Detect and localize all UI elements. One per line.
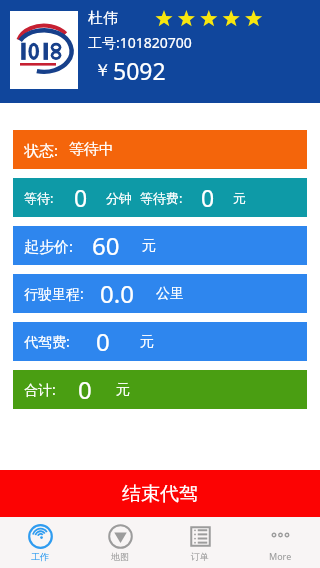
button[interactable]: 订单 [160, 517, 240, 568]
staticText: 杜伟 [88, 9, 118, 28]
staticText: 行驶里程: [24, 284, 84, 303]
staticText: 5092 [113, 55, 166, 86]
staticText: 元 [233, 190, 246, 206]
staticText: 公里 [156, 285, 184, 303]
staticText: 等待中 [69, 140, 114, 159]
staticText: 等待费: [140, 189, 183, 207]
button[interactable]: 代驾费: [13, 322, 307, 361]
staticText: 订单 [191, 551, 209, 562]
button[interactable]: 行驶里程: [13, 274, 307, 313]
staticText: 0.0 [100, 277, 134, 310]
button[interactable]: 工作 [0, 517, 80, 568]
staticText: 0 [78, 373, 92, 406]
staticText: 元 [116, 381, 130, 399]
staticText: 元 [140, 333, 154, 351]
staticText: 等待: [24, 189, 54, 207]
button[interactable]: 状态: [13, 130, 307, 169]
staticText: 元 [142, 237, 156, 255]
button[interactable]: 等待: [13, 178, 307, 217]
staticText: 0 [74, 182, 88, 213]
staticText: 地图 [111, 551, 129, 562]
staticText: 合计: [24, 380, 56, 399]
staticText: 0 [96, 325, 110, 358]
staticText: 60 [92, 229, 120, 262]
button[interactable]: 起步价: [13, 226, 307, 265]
staticText: 结束代驾 [122, 482, 198, 506]
button[interactable]: 1018 logo [10, 11, 78, 89]
button[interactable]: 合计: [13, 370, 307, 409]
button[interactable]: 地图 [80, 517, 160, 568]
staticText: 分钟 [106, 190, 132, 206]
staticText: ￥ [94, 60, 111, 81]
staticText: 0 [201, 182, 215, 213]
staticText: 状态: [24, 140, 59, 160]
button[interactable]: 结束代驾 [0, 470, 320, 517]
staticText: 工号:101820700 [88, 33, 192, 52]
button[interactable]: More [240, 517, 320, 568]
staticText: More [269, 550, 292, 562]
staticText: 工作 [31, 551, 49, 562]
staticText: 起步价: [24, 236, 74, 256]
staticText: 代驾费: [24, 332, 70, 351]
